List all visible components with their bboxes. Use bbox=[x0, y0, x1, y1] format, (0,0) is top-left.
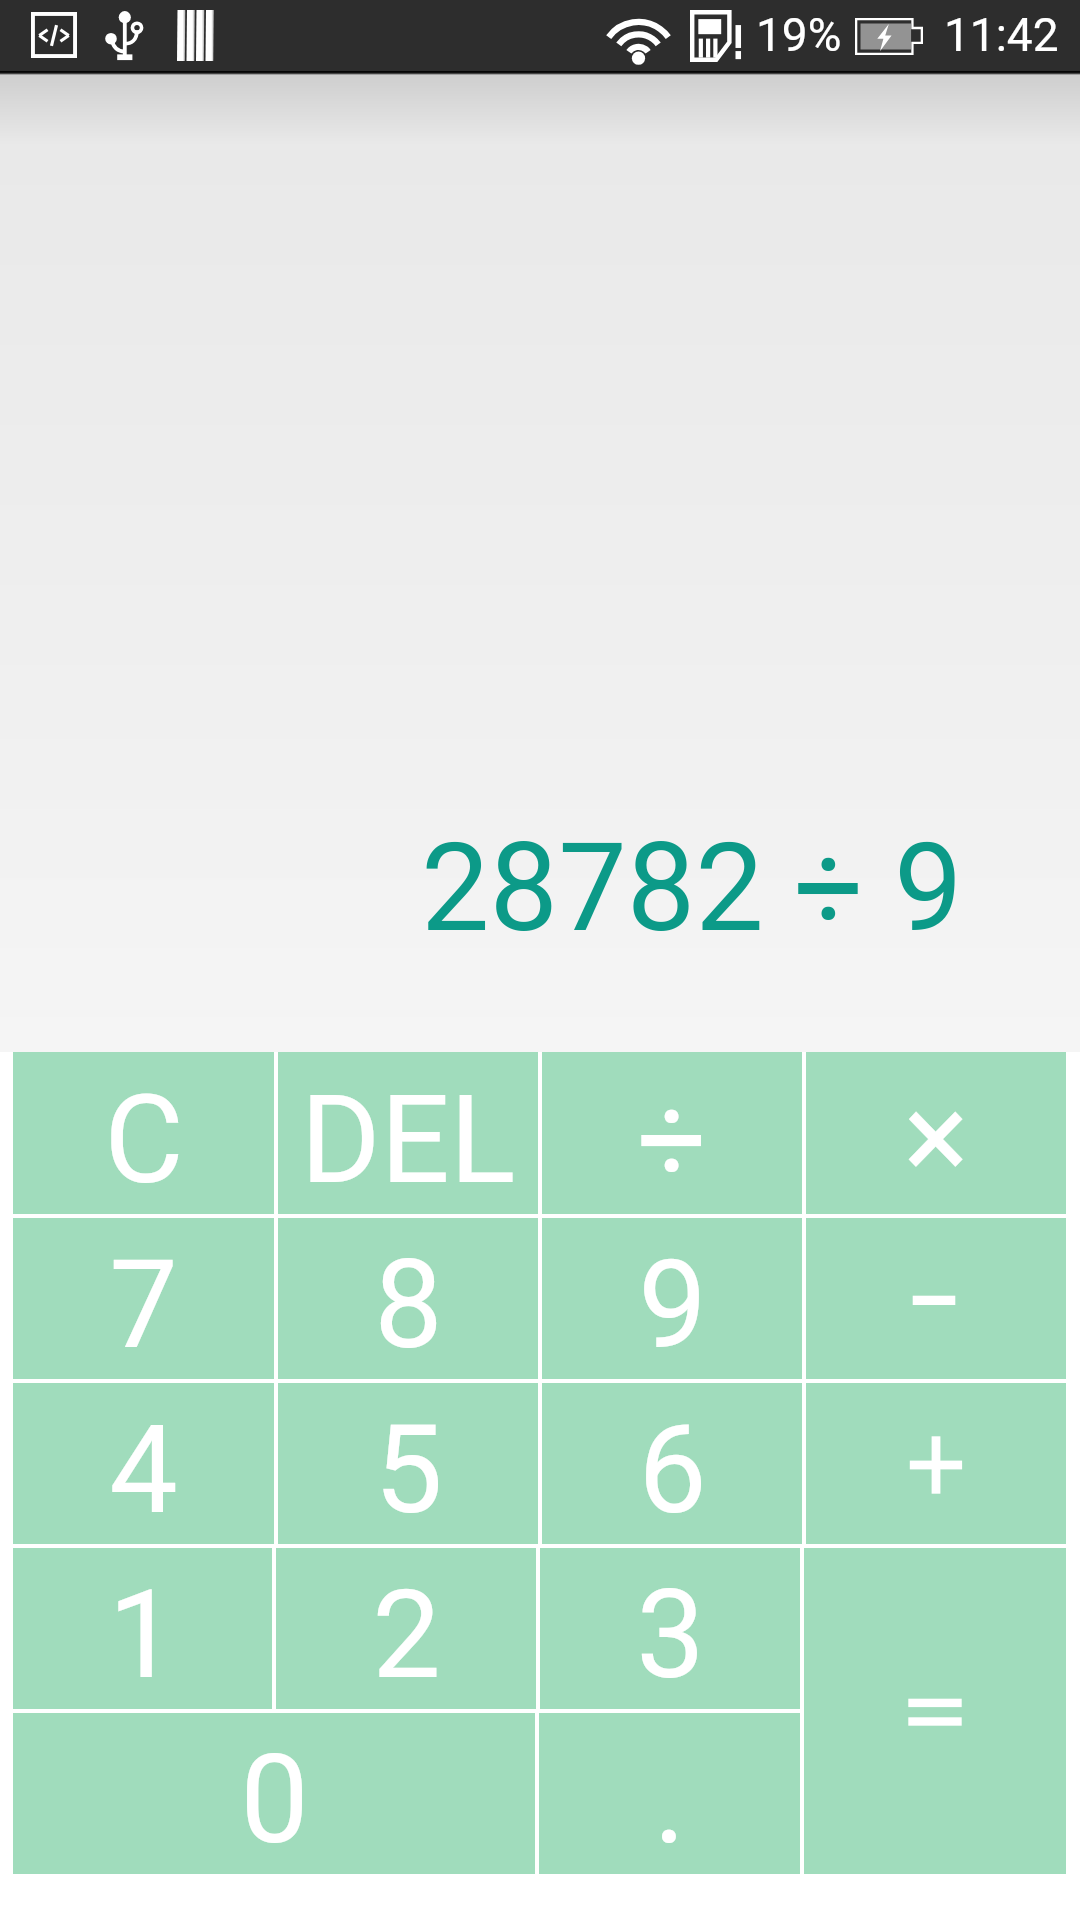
button[interactable]: 0 bbox=[13, 1713, 535, 1874]
staticText: 3 bbox=[636, 1564, 705, 1707]
button[interactable]: 1 bbox=[13, 1548, 272, 1709]
button[interactable]: 4 bbox=[13, 1383, 274, 1544]
button[interactable]: C bbox=[13, 1052, 274, 1214]
staticText: 5 bbox=[374, 1399, 443, 1542]
button[interactable]: 28782 ÷ 9 bbox=[421, 817, 963, 960]
button[interactable]: 3 bbox=[540, 1548, 800, 1709]
staticText: 6 bbox=[638, 1399, 707, 1542]
button[interactable]: × bbox=[806, 1052, 1066, 1214]
button[interactable]: Equals bbox=[804, 1548, 1066, 1874]
staticText: × bbox=[903, 1066, 969, 1209]
button[interactable]: 7 bbox=[13, 1218, 274, 1379]
staticText: 7 bbox=[109, 1234, 178, 1377]
staticText: ÷ bbox=[637, 1069, 707, 1212]
staticText: . bbox=[653, 1729, 686, 1872]
staticText: C bbox=[104, 1069, 184, 1212]
button[interactable]: . bbox=[539, 1713, 800, 1874]
staticText: 4 bbox=[109, 1399, 178, 1542]
button[interactable]: 6 bbox=[542, 1383, 802, 1544]
button[interactable]: Plus bbox=[806, 1383, 1066, 1544]
button[interactable]: 8 bbox=[278, 1218, 538, 1379]
staticText: 1 bbox=[108, 1564, 177, 1707]
staticText: 8 bbox=[374, 1234, 443, 1377]
button[interactable]: Minus bbox=[806, 1218, 1066, 1379]
staticText: 19% bbox=[756, 8, 842, 62]
button[interactable]: 9 bbox=[542, 1218, 802, 1379]
staticText: 2 bbox=[372, 1564, 441, 1707]
staticText: 0 bbox=[240, 1729, 309, 1872]
staticText: 11:42 bbox=[944, 8, 1059, 62]
button[interactable]: ÷ bbox=[542, 1052, 802, 1214]
staticText: DEL bbox=[300, 1069, 516, 1212]
button[interactable]: DEL bbox=[278, 1052, 538, 1214]
button[interactable]: 2 bbox=[276, 1548, 536, 1709]
button[interactable]: 5 bbox=[278, 1383, 538, 1544]
staticText: 9 bbox=[638, 1234, 707, 1377]
